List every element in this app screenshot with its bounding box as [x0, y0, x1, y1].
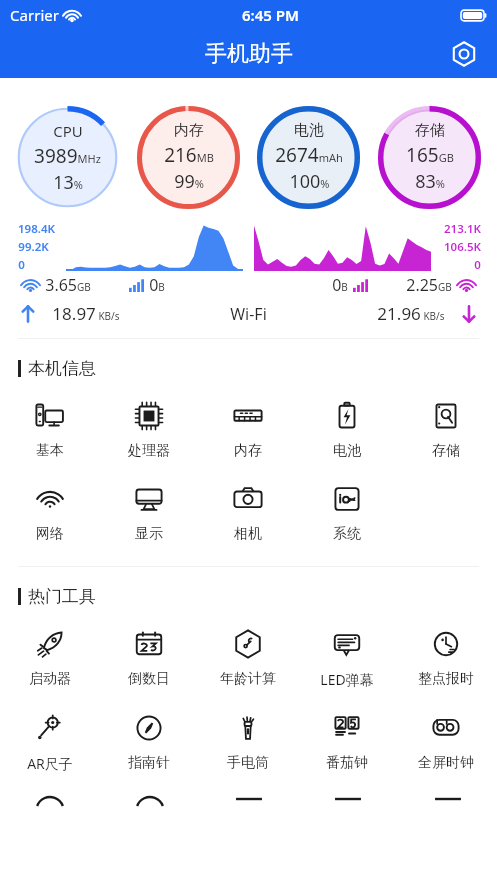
button[interactable]: CPU [14, 104, 121, 211]
staticText: 热门工具 [28, 586, 96, 607]
button[interactable]: 手电筒 [198, 711, 297, 772]
staticText: 相机 [234, 525, 262, 543]
staticText: 网络 [36, 525, 64, 543]
staticText: 内存 [234, 442, 262, 460]
staticText: 106.5K [444, 239, 481, 255]
button[interactable]: 系统 [297, 482, 396, 543]
button[interactable]: 存储 [396, 399, 495, 460]
staticText: 倒数日 [128, 670, 170, 688]
button[interactable]: 年龄计算 [198, 627, 297, 688]
button[interactable]: Settings [447, 37, 481, 71]
button[interactable]: LED弹幕 [297, 627, 396, 689]
staticText: 21.96 KB/s [377, 302, 445, 325]
staticText: 电池 [333, 442, 361, 460]
button[interactable]: 显示 [99, 482, 198, 543]
button[interactable]: 启动器 [0, 627, 99, 688]
button[interactable]: 电池 [255, 104, 362, 211]
button[interactable]: 全屏时钟 [396, 711, 495, 772]
staticText: AR尺子 [27, 754, 73, 773]
staticText: 13% [53, 170, 83, 195]
staticText: 启动器 [29, 670, 71, 688]
staticText: 手电筒 [227, 754, 269, 772]
staticText: 99% [174, 169, 204, 194]
staticText: 3989MHz [34, 143, 101, 169]
staticText: 内存 [174, 121, 204, 140]
button[interactable]: AR尺子 [0, 711, 99, 773]
staticText: 6:45 PM [242, 5, 299, 25]
button[interactable]: 内存 [198, 399, 297, 460]
staticText: 基本 [36, 442, 64, 460]
staticText: 213.1K [444, 221, 481, 237]
staticText: LED弹幕 [320, 670, 374, 689]
staticText: 电池 [294, 121, 324, 140]
staticText: Carrier [10, 5, 59, 25]
staticText: 处理器 [128, 442, 170, 460]
staticText: 3.65GB [45, 274, 91, 296]
button[interactable]: 基本 [0, 399, 99, 460]
staticText: 0B [149, 274, 165, 296]
staticText: 指南针 [128, 754, 170, 772]
staticText: 存储 [432, 442, 460, 460]
button[interactable]: 指南针 [99, 711, 198, 772]
staticText: 2674mAh [275, 142, 343, 168]
staticText: 系统 [333, 525, 361, 543]
button[interactable]: 番茄钟 [297, 711, 396, 772]
button[interactable]: 内存 [135, 104, 242, 211]
button[interactable]: 相机 [198, 482, 297, 543]
staticText: 198.4K [18, 221, 55, 237]
button[interactable]: 网络 [0, 482, 99, 543]
staticText: 年龄计算 [220, 670, 276, 688]
staticText: 0B [332, 274, 348, 296]
button[interactable]: 整点报时 [396, 627, 495, 688]
staticText: 存储 [415, 121, 445, 140]
staticText: 2.25GB [406, 274, 452, 296]
staticText: 165GB [406, 142, 454, 168]
staticText: 0 [18, 257, 25, 271]
staticText: 216MB [164, 142, 214, 168]
staticText: Wi-Fi [230, 303, 267, 325]
staticText: 本机信息 [28, 358, 96, 379]
staticText: 番茄钟 [326, 754, 368, 772]
staticText: 18.97 KB/s [52, 302, 120, 325]
staticText: 手机助手 [205, 40, 293, 68]
button[interactable]: 处理器 [99, 399, 198, 460]
button[interactable]: 电池 [297, 399, 396, 460]
staticText: 100% [289, 169, 330, 194]
staticText: 整点报时 [418, 670, 474, 688]
staticText: 83% [415, 169, 445, 194]
staticText: 全屏时钟 [418, 754, 474, 772]
staticText: 0 [474, 257, 481, 271]
button[interactable]: 存储 [376, 104, 483, 211]
button[interactable]: 倒数日 [99, 627, 198, 688]
staticText: 显示 [135, 525, 163, 543]
staticText: CPU [53, 121, 83, 141]
staticText: 99.2K [18, 239, 49, 255]
